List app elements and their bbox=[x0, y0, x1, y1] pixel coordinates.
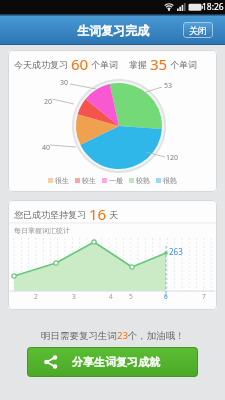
staticText: 18:26 bbox=[202, 1, 224, 13]
staticText: 较熟 bbox=[136, 176, 150, 185]
staticText: 一般 bbox=[109, 176, 123, 185]
staticText: 天 bbox=[107, 208, 119, 220]
staticText: 掌握 bbox=[129, 58, 150, 70]
staticText: 6 bbox=[164, 292, 168, 301]
staticText: 35 bbox=[150, 54, 168, 74]
staticText: 较生 bbox=[82, 176, 96, 185]
staticText: 个单词 bbox=[89, 58, 119, 70]
staticText: 生词复习完成 bbox=[77, 23, 149, 38]
staticText: 您已成功坚持复习 bbox=[14, 208, 89, 220]
staticText: 很生 bbox=[55, 176, 69, 185]
staticText: 30 bbox=[60, 78, 69, 88]
staticText: 120 bbox=[166, 153, 179, 163]
staticText: 个单词 bbox=[168, 58, 198, 70]
staticText: 40 bbox=[42, 143, 51, 153]
staticText: 20 bbox=[44, 97, 53, 107]
staticText: 263 bbox=[169, 246, 183, 257]
staticText: 5 bbox=[129, 292, 133, 301]
staticText: 关闭 bbox=[189, 25, 207, 36]
staticText: 分享生词复习成就 bbox=[72, 355, 160, 369]
staticText: 很熟 bbox=[163, 176, 177, 185]
staticText: 3 bbox=[72, 292, 76, 301]
staticText: 60 bbox=[71, 54, 89, 74]
staticText: 7 bbox=[202, 292, 206, 301]
staticText: 4 bbox=[109, 292, 113, 301]
staticText: 2 bbox=[34, 292, 38, 301]
staticText: 53 bbox=[164, 81, 173, 91]
button[interactable]: 分享生词复习成就 bbox=[27, 347, 198, 377]
button[interactable]: 关闭 bbox=[183, 22, 213, 38]
staticText: 16 bbox=[89, 204, 107, 224]
staticText: 明日需要复习生词23个，加油哦！ bbox=[41, 329, 185, 342]
staticText: 今天成功复习 bbox=[14, 58, 71, 70]
staticText: 每日掌握词汇统计 bbox=[14, 226, 70, 235]
